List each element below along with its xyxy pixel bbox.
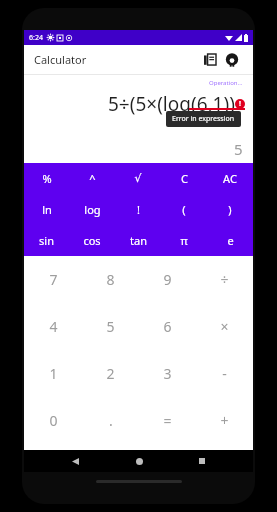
button[interactable]: 5 [82,303,139,350]
staticText: ln [42,202,52,217]
staticText: log [84,202,101,217]
staticText: + [220,411,229,430]
staticText: ! [137,202,140,217]
staticText: Error in expression [172,114,235,124]
button[interactable]: 2 [82,350,139,397]
button[interactable]: AC [207,163,253,194]
staticText: cos [83,233,101,248]
staticText: . [109,411,113,430]
button[interactable]: sin [24,225,69,256]
button[interactable]: = [139,397,196,444]
button[interactable]: 7 [24,256,82,303]
button[interactable]: - [196,350,253,397]
staticText: 8 [106,270,115,289]
button[interactable]: Back [63,450,87,472]
staticText: 2 [106,364,115,383]
staticText: 4 [49,317,58,336]
staticText: sin [39,233,54,248]
button[interactable]: π [161,225,207,256]
button[interactable]: log [69,194,115,225]
button[interactable]: Recent apps [190,450,214,472]
button[interactable]: GitHub [221,49,243,71]
staticText: - [222,364,227,383]
staticText: 6 [163,317,172,336]
staticText: tan [130,233,147,248]
button[interactable]: 4 [24,303,82,350]
staticText: Calculator [34,52,87,67]
staticText: e [227,233,234,248]
staticText: ) [228,202,232,217]
staticText: 7 [49,270,58,289]
staticText: π [180,233,188,248]
button[interactable]: 1 [24,350,82,397]
staticText: √ [134,172,142,185]
staticText: ( [182,202,186,217]
staticText: C [181,171,188,186]
button[interactable]: ÷ [196,256,253,303]
staticText: 1 [49,364,58,383]
button[interactable]: × [196,303,253,350]
staticText: × [220,317,229,336]
staticText: 5 [234,139,243,159]
button[interactable]: Home [127,450,151,472]
button[interactable]: 3 [139,350,196,397]
staticText: 3 [163,364,172,383]
staticText: 0 [49,411,58,430]
staticText: Operation... [209,79,243,87]
button[interactable]: 6 [139,303,196,350]
button[interactable]: C [161,163,207,194]
staticText: 5 [106,317,115,336]
button[interactable]: 9 [139,256,196,303]
button[interactable]: % [24,163,69,194]
staticText: AC [223,171,237,186]
button[interactable]: ) [207,194,253,225]
button[interactable]: ! [115,194,161,225]
button[interactable]: Error in expression [235,99,245,109]
button[interactable]: ln [24,194,69,225]
staticText: 6:24 [29,33,43,43]
staticText: % [42,171,52,186]
button[interactable]: √ [115,163,161,194]
button[interactable]: e [207,225,253,256]
staticText: ÷ [220,270,229,289]
staticText: 9 [163,270,172,289]
button[interactable]: History [199,49,221,71]
staticText: = [163,411,172,430]
staticText: 5÷(5×(log(6.1)) [108,91,235,117]
button[interactable]: + [196,397,253,444]
staticText: ^ [89,171,96,186]
staticText: ! [239,99,241,109]
button[interactable]: 8 [82,256,139,303]
button[interactable]: 0 [24,397,82,444]
button[interactable]: tan [115,225,161,256]
button[interactable]: cos [69,225,115,256]
button[interactable]: ( [161,194,207,225]
button[interactable]: ^ [69,163,115,194]
